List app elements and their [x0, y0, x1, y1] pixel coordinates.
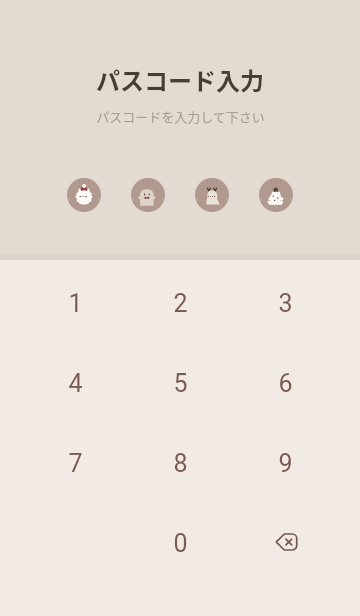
staticText: 7	[68, 449, 83, 478]
staticText: 6	[278, 369, 293, 398]
staticText: 3	[278, 289, 293, 318]
staticText: 1	[68, 289, 83, 318]
staticText: 8	[173, 449, 188, 478]
button[interactable]: Delete	[233, 500, 338, 580]
staticText: 5	[173, 369, 188, 398]
button[interactable]: 4	[22, 340, 128, 420]
staticText: 0	[173, 529, 188, 558]
staticText: 2	[173, 289, 188, 318]
button[interactable]: 2	[128, 260, 233, 340]
button[interactable]: 0	[128, 500, 233, 580]
button[interactable]: 8	[128, 420, 233, 500]
button[interactable]: 6	[233, 340, 338, 420]
staticText: パスコード入力	[96, 62, 264, 97]
staticText: 9	[278, 449, 293, 478]
staticText: 4	[68, 369, 83, 398]
button[interactable]: 7	[22, 420, 128, 500]
other: Delete	[262, 516, 310, 564]
button[interactable]: 5	[128, 340, 233, 420]
button[interactable]: 3	[233, 260, 338, 340]
button[interactable]: 1	[22, 260, 128, 340]
button[interactable]: 9	[233, 420, 338, 500]
staticText: パスコードを入力して下さい	[96, 107, 265, 126]
